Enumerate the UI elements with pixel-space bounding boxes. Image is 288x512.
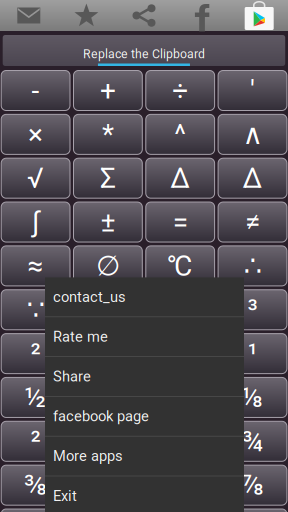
- staticText: Share: [53, 368, 91, 385]
- button[interactable]: Rate me: [45, 317, 244, 356]
- button[interactable]: ⅙: [1, 509, 70, 512]
- button[interactable]: ¹: [218, 334, 287, 374]
- button[interactable]: Exit: [45, 476, 244, 512]
- button[interactable]: ∧: [218, 114, 287, 154]
- button[interactable]: ×: [1, 114, 70, 154]
- button[interactable]: ⅓: [73, 377, 142, 417]
- button[interactable]: ⁵: [146, 334, 215, 374]
- button[interactable]: ': [218, 70, 287, 110]
- button[interactable]: Σ: [73, 158, 142, 198]
- button[interactable]: ⅕: [73, 421, 142, 461]
- button[interactable]: ⅛: [218, 377, 287, 417]
- staticText: Σ: [100, 162, 116, 195]
- staticText: *: [102, 118, 114, 151]
- staticText: ⁵: [175, 337, 185, 370]
- button[interactable]: ⅒: [218, 509, 287, 512]
- staticText: ¾: [241, 425, 263, 458]
- staticText: ×: [28, 118, 43, 151]
- staticText: ∅: [96, 250, 120, 282]
- button[interactable]: ±: [73, 202, 142, 242]
- button[interactable]: ⁴: [73, 334, 142, 374]
- button[interactable]: *: [73, 114, 142, 154]
- staticText: ³: [247, 293, 257, 326]
- button[interactable]: ^: [146, 114, 215, 154]
- staticText: ⅓: [95, 381, 120, 414]
- button[interactable]: Email us: [0, 0, 58, 31]
- button[interactable]: Share: [45, 357, 244, 396]
- button[interactable]: ⅝: [73, 465, 142, 505]
- button[interactable]: -: [1, 70, 70, 110]
- staticText: facebook page: [53, 408, 149, 425]
- staticText: ÷: [172, 74, 188, 107]
- staticText: ∧: [242, 118, 262, 151]
- button[interactable]: ⅜: [1, 465, 70, 505]
- button[interactable]: ∵: [1, 290, 70, 330]
- staticText: ½: [25, 381, 47, 414]
- staticText: ∵: [27, 293, 45, 326]
- button[interactable]: =: [146, 202, 215, 242]
- staticText: ⅜: [24, 469, 48, 501]
- button[interactable]: ⁰: [73, 290, 142, 330]
- staticText: =: [173, 206, 188, 238]
- button[interactable]: ≈: [1, 246, 70, 286]
- button[interactable]: ⅔: [146, 377, 215, 417]
- button[interactable]: ⅞: [218, 465, 287, 505]
- staticText: ²: [31, 425, 41, 458]
- button[interactable]: ∫: [1, 202, 70, 242]
- button[interactable]: ≠: [218, 202, 287, 242]
- staticText: ∫: [32, 206, 39, 238]
- button[interactable]: facebook page: [45, 397, 244, 436]
- button[interactable]: √: [1, 158, 70, 198]
- button[interactable]: Rate this app: [58, 0, 115, 31]
- staticText: ±: [100, 206, 115, 238]
- button[interactable]: More apps on Google Play: [230, 0, 288, 31]
- button[interactable]: ÷: [146, 70, 215, 110]
- button[interactable]: contact_us: [45, 277, 244, 316]
- staticText: ≠: [245, 206, 260, 238]
- button[interactable]: ²: [1, 334, 70, 374]
- button[interactable]: ∆: [146, 158, 215, 198]
- button[interactable]: More apps: [45, 437, 244, 476]
- staticText: ⁰: [103, 293, 113, 326]
- staticText: ≈: [28, 249, 44, 282]
- staticText: ∆: [170, 162, 190, 195]
- staticText: ⅕: [96, 425, 120, 458]
- staticText: ℃: [168, 249, 193, 282]
- button[interactable]: ²: [1, 421, 70, 461]
- button[interactable]: Facebook page: [173, 0, 230, 31]
- staticText: +: [100, 74, 116, 107]
- staticText: ∴: [243, 250, 261, 282]
- staticText: ∆: [242, 162, 262, 195]
- staticText: ': [250, 74, 255, 107]
- staticText: Replace the Clipboard: [83, 47, 205, 61]
- staticText: ¹: [247, 337, 257, 370]
- staticText: ⅛: [241, 381, 263, 414]
- button[interactable]: ³: [218, 290, 287, 330]
- staticText: ⅞: [241, 469, 263, 501]
- button[interactable]: ¾: [218, 421, 287, 461]
- staticText: ²: [31, 337, 41, 370]
- staticText: contact_us: [53, 288, 126, 305]
- staticText: √: [27, 162, 44, 195]
- button[interactable]: ∴: [218, 246, 287, 286]
- button[interactable]: Share: [115, 0, 173, 31]
- staticText: -: [32, 74, 40, 107]
- staticText: ⁴: [103, 337, 113, 370]
- staticText: More apps: [53, 447, 123, 465]
- staticText: Rate me: [53, 328, 108, 345]
- button[interactable]: ℃: [146, 246, 215, 286]
- staticText: Exit: [53, 487, 77, 504]
- button[interactable]: ∆: [218, 158, 287, 198]
- button[interactable]: +: [73, 70, 142, 110]
- button[interactable]: ½: [1, 377, 70, 417]
- button[interactable]: ∅: [73, 246, 142, 286]
